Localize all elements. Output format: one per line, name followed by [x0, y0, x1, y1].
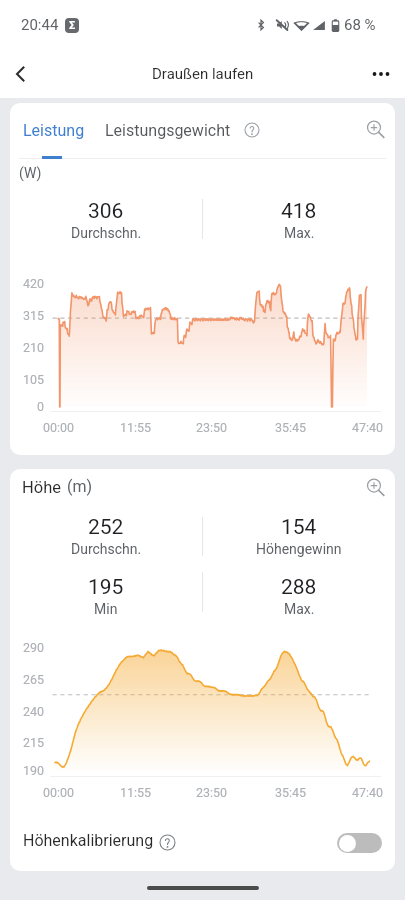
staticText: (m) [67, 477, 93, 496]
button[interactable]: Leistung [23, 121, 85, 140]
staticText: 315 [23, 308, 45, 323]
staticText: 215 [23, 735, 45, 750]
staticText: 195 [88, 575, 124, 600]
staticText: Min [94, 601, 118, 617]
staticText: 68 % [344, 16, 376, 34]
staticText: Draußen laufen [152, 65, 254, 83]
button[interactable]: More options [361, 54, 401, 94]
staticText: 154 [281, 515, 317, 540]
staticText: 20:44 [21, 16, 59, 34]
staticText: Max. [284, 225, 315, 241]
staticText: 306 [88, 199, 124, 224]
staticText: 252 [88, 515, 124, 540]
staticText: 00:00 [43, 420, 75, 435]
staticText: 265 [23, 672, 45, 687]
staticText: 240 [23, 704, 45, 719]
button[interactable]: Höhenkalibrierung [10, 817, 395, 870]
staticText: Durchschn. [71, 225, 142, 241]
staticText: 35:45 [275, 420, 307, 435]
staticText: 418 [281, 199, 317, 224]
staticText: (W) [19, 165, 42, 181]
staticText: Σ [69, 19, 76, 32]
staticText: 420 [23, 276, 45, 291]
staticText: Höhenkalibrierung [23, 831, 154, 850]
staticText: Durchschn. [71, 541, 142, 557]
staticText: 290 [23, 640, 45, 655]
staticText: 210 [23, 340, 45, 355]
staticText: 35:45 [275, 785, 307, 800]
staticText: 11:55 [120, 420, 152, 435]
staticText: 47:40 [352, 420, 384, 435]
staticText: 23:50 [196, 785, 228, 800]
button[interactable]: Zoom in [362, 474, 388, 500]
staticText: 288 [281, 575, 317, 600]
staticText: Höhengewinn [256, 541, 342, 557]
staticText: 00:00 [43, 785, 75, 800]
staticText: 190 [23, 763, 45, 778]
button[interactable]: Back [1, 54, 41, 94]
staticText: 23:50 [196, 420, 228, 435]
button[interactable]: Zoom in [362, 116, 388, 142]
button[interactable]: Leistungsgewicht [105, 121, 231, 140]
staticText: Höhe [22, 478, 62, 497]
staticText: 11:55 [120, 785, 152, 800]
staticText: 105 [23, 372, 45, 387]
button[interactable]: Help [241, 119, 263, 141]
staticText: 47:40 [352, 785, 384, 800]
staticText: Max. [284, 601, 315, 617]
staticText: 0 [37, 399, 45, 414]
